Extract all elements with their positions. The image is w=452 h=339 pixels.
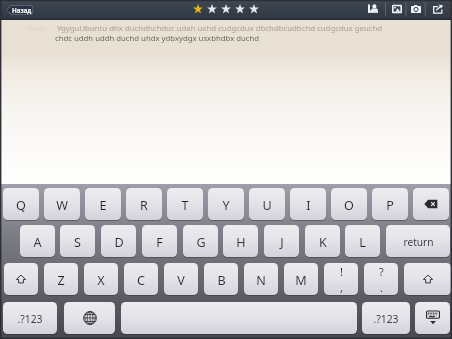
staticText: ? bbox=[379, 264, 384, 279]
staticText: YgyguUbuntu dhx duchdhchduc udah uxhd cu… bbox=[57, 23, 383, 34]
button[interactable]: Backspace bbox=[413, 188, 449, 220]
staticText: ! bbox=[340, 264, 343, 279]
button[interactable]: D bbox=[101, 225, 136, 257]
button[interactable]: M bbox=[284, 263, 318, 295]
staticText: U bbox=[262, 197, 272, 214]
button[interactable]: T bbox=[167, 188, 203, 220]
button[interactable]: Star 3 bbox=[219, 4, 233, 14]
staticText: M bbox=[295, 272, 307, 289]
button[interactable]: U bbox=[249, 188, 285, 220]
button[interactable]: Shift bbox=[4, 263, 38, 295]
button[interactable]: Z bbox=[44, 263, 78, 295]
staticText: W bbox=[56, 197, 68, 214]
button[interactable]: H bbox=[223, 225, 258, 257]
button[interactable]: O bbox=[331, 188, 367, 220]
staticText: I bbox=[306, 197, 311, 214]
staticText: B bbox=[217, 272, 226, 289]
staticText: chdc uddh uddh duchd uhdx ydbxydgx usxbh… bbox=[55, 33, 260, 44]
button[interactable]: Star 2 bbox=[205, 4, 219, 14]
button[interactable]: ! bbox=[324, 263, 358, 295]
button[interactable]: I bbox=[290, 188, 326, 220]
staticText: S bbox=[74, 234, 81, 251]
staticText: N bbox=[256, 272, 266, 289]
staticText: T bbox=[181, 197, 189, 214]
staticText: .?123 bbox=[373, 312, 399, 326]
button[interactable]: P bbox=[372, 188, 408, 220]
button[interactable]: K bbox=[305, 225, 340, 257]
button[interactable]: Next keyboard bbox=[64, 302, 115, 334]
button[interactable]: N bbox=[244, 263, 278, 295]
button[interactable]: X bbox=[84, 263, 118, 295]
staticText: . bbox=[380, 280, 383, 295]
staticText: return bbox=[403, 235, 434, 249]
button[interactable]: Y bbox=[208, 188, 244, 220]
button[interactable]: F bbox=[142, 225, 177, 257]
staticText: Z bbox=[57, 272, 65, 289]
button[interactable]: .?123 bbox=[3, 302, 57, 334]
button[interactable]: J bbox=[264, 225, 299, 257]
button[interactable]: Q bbox=[3, 188, 39, 220]
staticText: J bbox=[280, 234, 284, 251]
staticText: Назад bbox=[12, 6, 32, 14]
staticText: X bbox=[97, 272, 105, 289]
staticText: R bbox=[140, 197, 148, 214]
staticText: L bbox=[359, 234, 366, 251]
button[interactable]: S bbox=[60, 225, 95, 257]
staticText: , bbox=[340, 280, 343, 295]
button[interactable]: Star 1 bbox=[191, 4, 205, 14]
button[interactable]: W bbox=[44, 188, 80, 220]
button[interactable]: V bbox=[164, 263, 198, 295]
button[interactable]: B bbox=[204, 263, 238, 295]
button[interactable]: L bbox=[345, 225, 380, 257]
button[interactable]: G bbox=[183, 225, 218, 257]
button[interactable]: A bbox=[20, 225, 55, 257]
button[interactable]: Camera bbox=[406, 0, 425, 18]
button[interactable]: Shift bbox=[404, 263, 451, 295]
staticText: A bbox=[33, 234, 42, 251]
staticText: H bbox=[236, 234, 246, 251]
staticText: D bbox=[114, 234, 124, 251]
staticText: V bbox=[177, 272, 185, 289]
button[interactable]: ? bbox=[364, 263, 398, 295]
button[interactable]: Photos bbox=[387, 0, 406, 18]
button[interactable]: Star 4 bbox=[233, 4, 247, 14]
button[interactable]: .?123 bbox=[362, 302, 410, 334]
button[interactable]: Contact bbox=[363, 0, 382, 18]
staticText: C bbox=[137, 272, 145, 289]
staticText: O bbox=[344, 197, 354, 214]
button[interactable]: Hide keyboard bbox=[415, 302, 450, 334]
staticText: Тема: bbox=[27, 23, 48, 34]
button[interactable]: E bbox=[85, 188, 121, 220]
staticText: Q bbox=[16, 197, 26, 214]
button[interactable]: Space bbox=[121, 302, 357, 334]
staticText: Y bbox=[222, 197, 230, 214]
button[interactable]: Share bbox=[428, 0, 447, 18]
staticText: .?123 bbox=[17, 312, 43, 326]
staticText: E bbox=[99, 197, 107, 214]
staticText: K bbox=[319, 234, 327, 251]
button[interactable]: Star 5 bbox=[247, 4, 261, 14]
button[interactable]: Назад bbox=[6, 5, 33, 15]
button[interactable]: return bbox=[386, 225, 450, 257]
staticText: G bbox=[196, 234, 206, 251]
button[interactable]: R bbox=[126, 188, 162, 220]
staticText: F bbox=[156, 234, 163, 251]
button[interactable]: C bbox=[124, 263, 158, 295]
staticText: P bbox=[386, 197, 394, 214]
